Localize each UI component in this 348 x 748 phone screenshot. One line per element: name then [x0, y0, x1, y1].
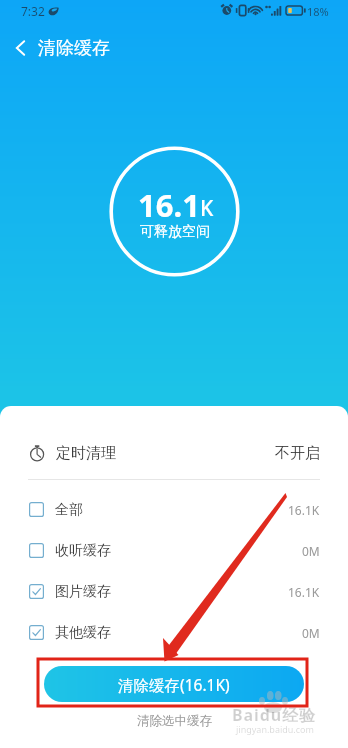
button[interactable]: 收听缓存	[0, 530, 348, 571]
staticText: 可释放空间	[140, 223, 210, 241]
staticText: 清除选中缓存	[137, 713, 212, 729]
staticText: 7:32	[21, 3, 45, 19]
staticText: jingyan.baidu.com	[236, 723, 314, 735]
staticText: 清除缓存(16.1K)	[118, 674, 230, 695]
staticText: 定时清理	[56, 444, 116, 463]
staticText: 收听缓存	[55, 542, 111, 560]
staticText: 不开启	[275, 444, 320, 463]
staticText: 清除缓存	[38, 37, 110, 60]
button[interactable]: 其他缓存	[0, 612, 348, 653]
staticText: 0M	[302, 625, 320, 641]
staticText: 16.1	[138, 184, 200, 226]
button[interactable]: 图片缓存	[0, 571, 348, 612]
staticText: 图片缓存	[55, 583, 111, 601]
staticText: 18%	[307, 4, 329, 19]
staticText: 0M	[302, 543, 320, 559]
staticText: Baidu经验	[232, 704, 316, 726]
staticText: K	[200, 194, 214, 223]
staticText: 其他缓存	[55, 624, 111, 642]
button[interactable]: 全部	[0, 489, 348, 530]
button[interactable]: Back	[0, 26, 38, 70]
button[interactable]: 清除缓存(16.1K)	[44, 666, 304, 702]
button[interactable]: 定时清理	[0, 431, 348, 475]
staticText: 16.1K	[288, 584, 320, 600]
staticText: 16.1K	[288, 502, 320, 518]
staticText: 全部	[55, 501, 83, 519]
